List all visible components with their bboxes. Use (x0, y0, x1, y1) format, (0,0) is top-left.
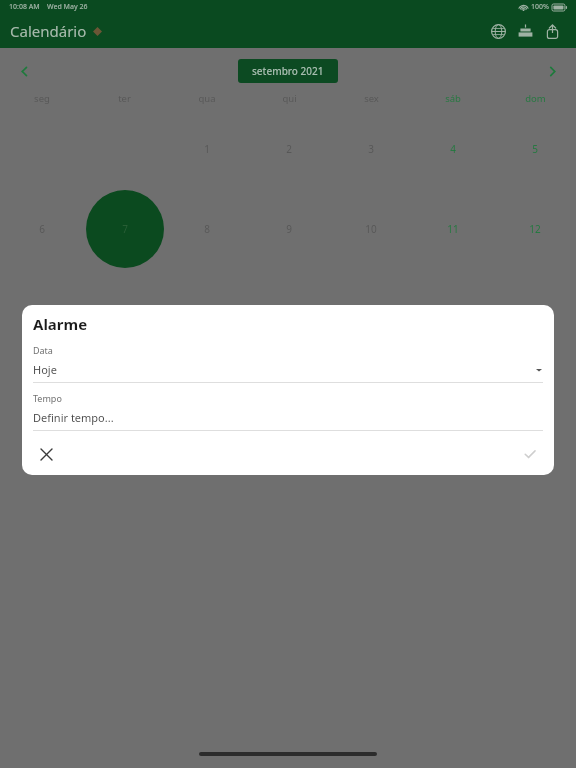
button[interactable]: 19 (494, 269, 576, 349)
button[interactable]: 15 (166, 269, 248, 349)
button[interactable]: 16 (248, 269, 330, 349)
staticText: 16 (283, 302, 295, 316)
staticText: ter (118, 92, 131, 105)
staticText: Calendário (10, 21, 87, 41)
staticText: Hoje (33, 362, 57, 377)
button[interactable]: setembro 2021 (238, 59, 338, 83)
staticText: 15 (201, 302, 213, 316)
staticText: Definir tempo... (33, 410, 114, 425)
button[interactable]: Confirm (517, 441, 543, 467)
staticText: Alarme (33, 314, 88, 334)
staticText: 11 (447, 222, 459, 236)
button[interactable]: 18 (412, 269, 494, 349)
staticText: 5 (532, 142, 538, 156)
button[interactable]: Cancel (33, 441, 59, 467)
button[interactable]: Lembrete (304, 364, 535, 386)
staticText: dom (525, 92, 546, 105)
staticText: Wed May 26 (47, 2, 88, 12)
staticText: 17 (365, 302, 377, 316)
staticText: 14 (119, 302, 131, 316)
staticText: 8 (204, 222, 210, 236)
staticText: 6 (39, 222, 45, 236)
staticText: 3 (368, 142, 374, 156)
staticText: qua (198, 92, 216, 105)
staticText: Tempo (33, 392, 62, 404)
staticText: setembro 2021 (252, 64, 324, 78)
staticText: Data (33, 344, 53, 356)
staticText: 10:08 AM (9, 2, 40, 12)
staticText: 2 (286, 142, 292, 156)
staticText: sex (364, 92, 379, 105)
staticText: 100% (531, 2, 549, 12)
button[interactable]: 12 (494, 189, 576, 269)
button[interactable]: 17 (330, 269, 412, 349)
button[interactable]: 5 (494, 109, 576, 189)
button[interactable]: Alarme (41, 413, 272, 435)
staticText: 9 (286, 222, 292, 236)
staticText: sáb (445, 92, 461, 105)
button[interactable]: 13 (0, 269, 83, 349)
button[interactable]: Share (539, 18, 566, 45)
staticText: 4 (450, 142, 456, 156)
button[interactable]: Next month (540, 59, 564, 83)
staticText: seg (34, 92, 50, 105)
staticText: 13 (36, 302, 48, 316)
staticText: 1 (204, 142, 210, 156)
staticText: 19 (529, 302, 541, 316)
staticText: 12 (529, 222, 541, 236)
button[interactable]: Language (485, 18, 512, 45)
staticText: 18 (447, 302, 459, 316)
button[interactable]: Definir tempo... (33, 410, 543, 425)
staticText: 10 (365, 222, 377, 236)
button[interactable]: Birthdays (512, 18, 539, 45)
button[interactable]: 7 (83, 189, 166, 269)
button[interactable]: 14 (83, 269, 166, 349)
staticText: 7 (122, 222, 128, 236)
staticText: qui (282, 92, 297, 105)
button[interactable]: Feriados (41, 364, 272, 386)
button[interactable]: Hoje (33, 362, 543, 377)
button[interactable]: Calculadora (304, 413, 535, 435)
button[interactable]: Previous month (12, 59, 36, 83)
